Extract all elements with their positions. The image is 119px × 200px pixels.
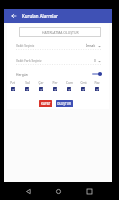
staticText: Cmt: [80, 81, 87, 85]
button[interactable]: Sal: [20, 81, 34, 91]
staticText: Pzt: [10, 81, 15, 85]
staticText: OLUŞTUR: [57, 102, 72, 106]
staticText: Paz: [94, 81, 100, 85]
staticText: Sal: [25, 81, 30, 85]
staticText: Çar: [38, 81, 44, 85]
staticText: 0: [94, 59, 96, 63]
button[interactable]: Çar: [34, 81, 48, 91]
button[interactable]: Back: [21, 184, 35, 198]
staticText: İmsak: [86, 44, 96, 48]
button[interactable]: Cum: [62, 81, 76, 91]
button[interactable]: Vakit Fark Seçiniz: [16, 59, 101, 65]
staticText: KAPAT: [41, 102, 51, 106]
button[interactable]: Pzt: [5, 81, 20, 91]
staticText: Per: [52, 81, 58, 85]
button[interactable]: Recents: [82, 184, 96, 198]
staticText: Vakit Fark Seçiniz: [16, 59, 42, 63]
staticText: Vakit Seçiniz: [16, 44, 35, 48]
staticText: Kurulan Alarmlar: [22, 13, 58, 19]
staticText: HATIRLATMA OLUŞTUR: [42, 30, 79, 35]
button[interactable]: Per: [48, 81, 62, 91]
button[interactable]: Hergün: [16, 71, 102, 77]
staticText: Cum: [66, 81, 73, 85]
button[interactable]: Home: [51, 184, 65, 198]
button[interactable]: Cmt: [76, 81, 90, 91]
button[interactable]: Back: [7, 9, 21, 23]
button[interactable]: Paz: [90, 81, 104, 91]
button[interactable]: OLUŞTUR: [56, 100, 73, 107]
staticText: Hergün: [16, 72, 28, 76]
button[interactable]: Vakit Seçiniz: [16, 44, 101, 50]
button[interactable]: KAPAT: [39, 100, 52, 107]
button[interactable]: HATIRLATMA OLUŞTUR: [19, 27, 101, 37]
